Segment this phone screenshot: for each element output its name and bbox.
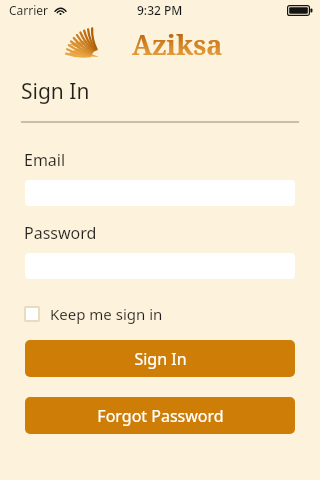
staticText: Keep me sign in: [50, 304, 163, 324]
staticText: Email: [24, 149, 66, 171]
staticText: Sign In: [21, 77, 90, 106]
other: Wi-Fi signal: [54, 5, 67, 15]
button[interactable]: Keep me sign in: [22, 302, 169, 326]
staticText: Sign In: [134, 348, 187, 370]
staticText: Carrier: [9, 2, 49, 18]
button[interactable]: Forgot Password: [25, 397, 295, 434]
button[interactable]: Sign In: [25, 340, 295, 377]
staticText: 9:32 PM: [137, 2, 183, 18]
staticText: Forgot Password: [97, 405, 224, 427]
other: Battery full: [287, 5, 313, 16]
staticText: Password: [24, 222, 97, 244]
staticText: Aziksa: [132, 26, 223, 63]
